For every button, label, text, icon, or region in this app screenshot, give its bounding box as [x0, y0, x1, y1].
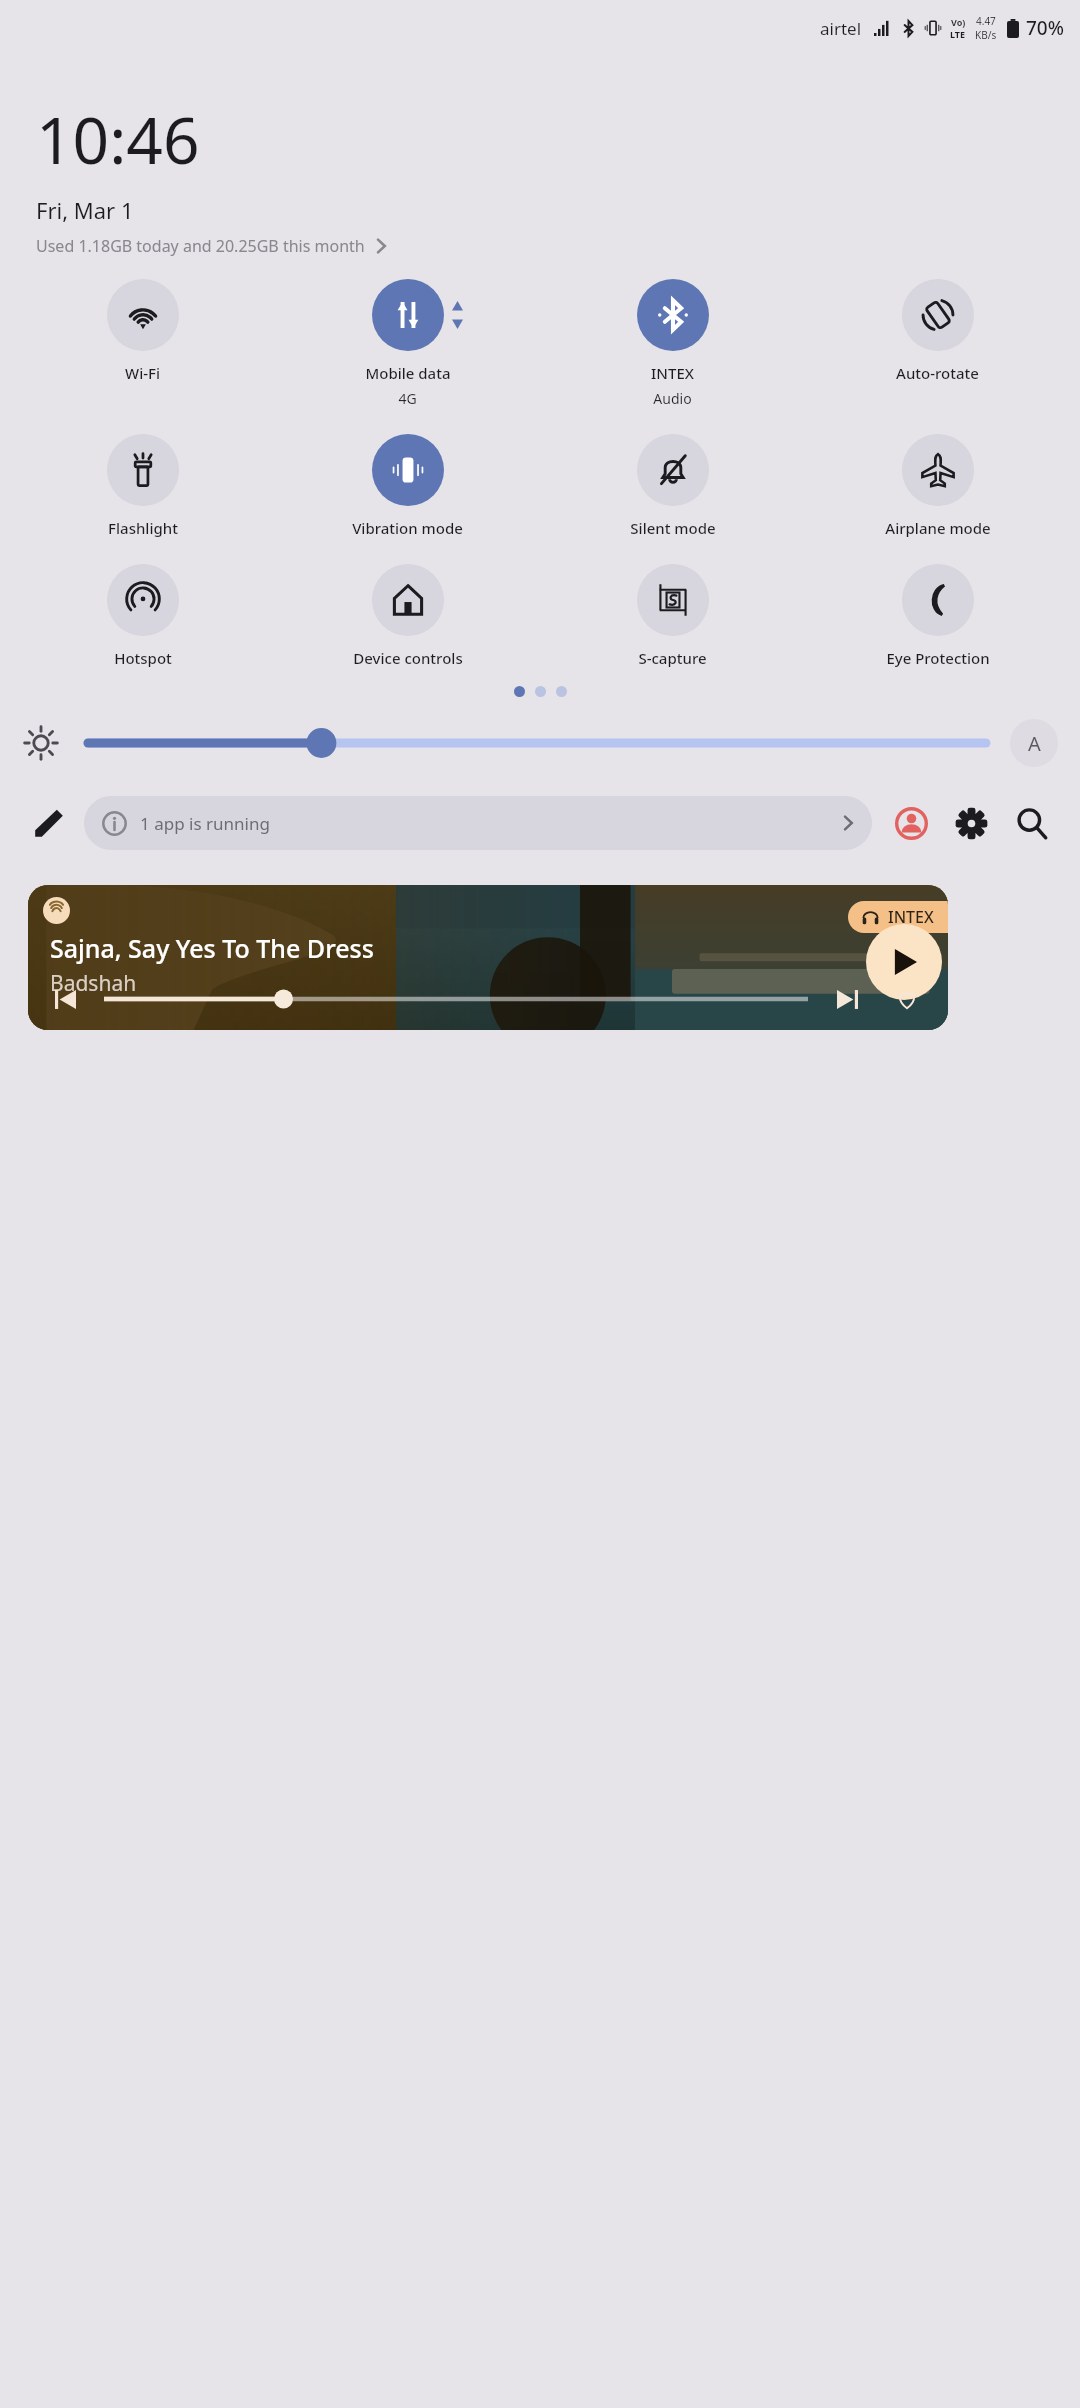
- button[interactable]: Eye Protection: [805, 562, 1070, 670]
- staticText: Sajna, Say Yes To The Dress: [50, 931, 374, 965]
- button[interactable]: INTEX: [540, 277, 805, 410]
- staticText: Audio: [653, 389, 692, 408]
- button[interactable]: Next: [830, 982, 864, 1016]
- staticText: Silent mode: [630, 518, 716, 538]
- staticText: Badshah: [50, 969, 137, 998]
- staticText: 4G: [398, 389, 417, 408]
- staticText: Fri, Mar 1: [36, 195, 134, 225]
- button[interactable]: Vibration mode: [275, 432, 540, 540]
- staticText: Wi-Fi: [125, 363, 160, 383]
- button[interactable]: Silent mode: [540, 432, 805, 540]
- staticText: Hotspot: [114, 648, 172, 668]
- button[interactable]: Airplane mode: [805, 432, 1070, 540]
- staticText: Vibration mode: [352, 518, 463, 538]
- staticText: KB/s: [975, 28, 997, 42]
- button[interactable]: 1 app is running: [84, 796, 872, 850]
- staticText: 4.47: [976, 14, 996, 28]
- button[interactable]: Wi-Fi: [10, 277, 275, 385]
- button[interactable]: Hotspot: [10, 562, 275, 670]
- staticText: Mobile data: [365, 363, 451, 383]
- staticText: S-capture: [638, 648, 707, 668]
- button[interactable]: Flashlight: [10, 432, 275, 540]
- button[interactable]: [104, 986, 808, 1012]
- staticText: Eye Protection: [886, 648, 990, 668]
- staticText: LTE: [950, 28, 966, 40]
- button[interactable]: Settings: [944, 796, 998, 850]
- staticText: Device controls: [353, 648, 463, 668]
- button[interactable]: S-capture: [540, 562, 805, 670]
- staticText: airtel: [820, 17, 862, 40]
- other: Spotify: [43, 897, 70, 924]
- staticText: Used 1.18GB today and 20.25GB this month: [36, 235, 365, 257]
- button[interactable]: Search: [1004, 796, 1058, 850]
- button[interactable]: Previous: [48, 982, 82, 1016]
- staticText: INTEX: [651, 363, 694, 383]
- button[interactable]: Mobile data: [275, 277, 540, 410]
- staticText: Auto-rotate: [896, 363, 979, 383]
- button[interactable]: User account: [884, 796, 938, 850]
- button[interactable]: Edit tiles: [22, 796, 76, 850]
- button[interactable]: Favourite: [890, 982, 924, 1016]
- staticText: Airplane mode: [885, 518, 991, 538]
- staticText: Vo): [951, 16, 966, 28]
- staticText: 10:46: [36, 96, 200, 183]
- button[interactable]: Used 1.18GB today and 20.25GB this month: [36, 235, 387, 257]
- staticText: INTEX: [888, 906, 934, 928]
- button[interactable]: [84, 721, 990, 765]
- staticText: 1 app is running: [140, 812, 270, 835]
- button[interactable]: Auto-rotate: [805, 277, 1070, 385]
- staticText: 70%: [1026, 15, 1064, 41]
- button[interactable]: Play: [866, 924, 942, 1000]
- other: Brightness: [22, 724, 60, 762]
- button[interactable]: Spotify: [28, 885, 948, 1030]
- button[interactable]: INTEX: [862, 901, 934, 933]
- staticText: A: [1028, 730, 1041, 757]
- staticText: Flashlight: [108, 518, 178, 538]
- button[interactable]: A: [1010, 719, 1058, 767]
- button[interactable]: Device controls: [275, 562, 540, 670]
